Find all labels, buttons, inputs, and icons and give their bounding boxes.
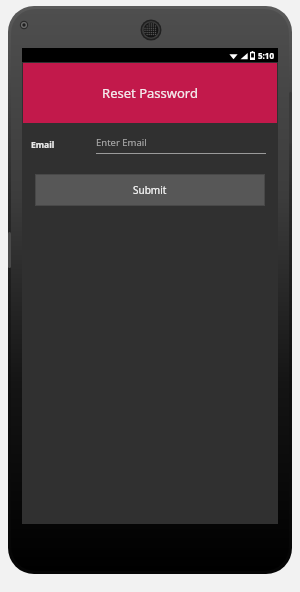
staticText: Submit bbox=[133, 183, 167, 197]
staticText: 5:10 bbox=[258, 50, 274, 61]
button[interactable]: Enter Email bbox=[96, 136, 266, 154]
button[interactable]: Submit bbox=[36, 175, 264, 205]
button[interactable]: Reset Password bbox=[23, 63, 277, 123]
staticText: Enter Email bbox=[96, 136, 147, 149]
staticText: Reset Password bbox=[102, 84, 198, 102]
staticText: Email bbox=[31, 139, 55, 151]
